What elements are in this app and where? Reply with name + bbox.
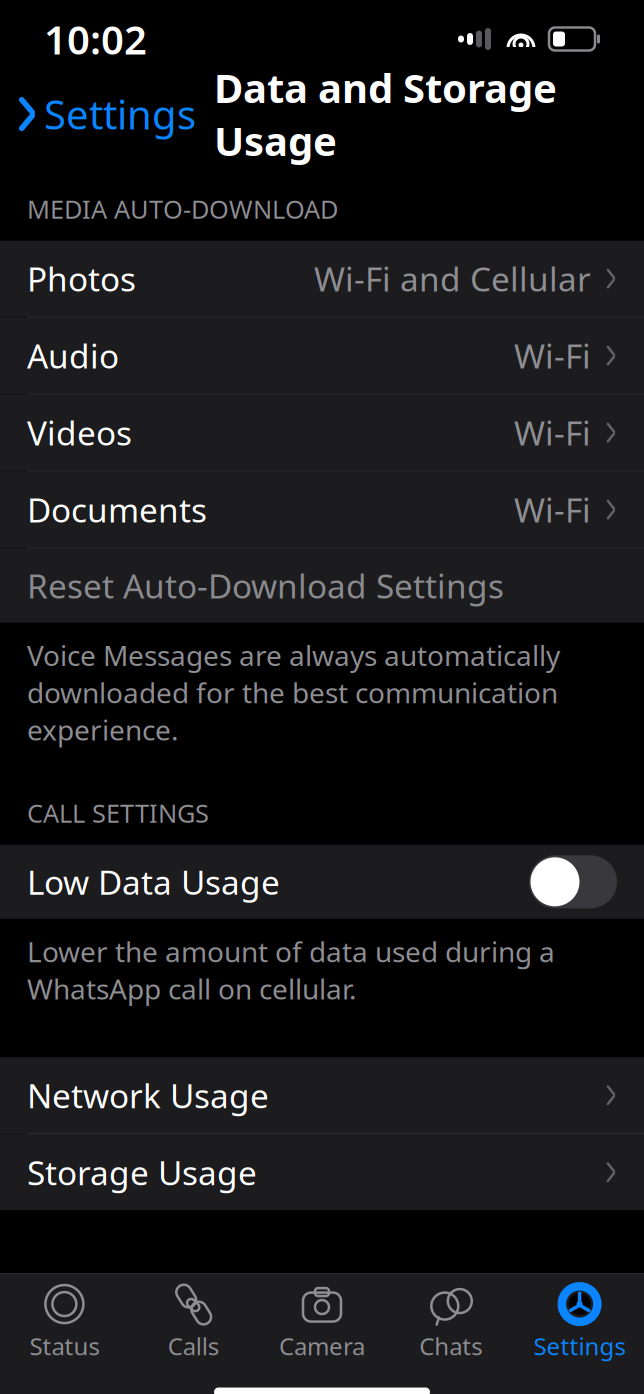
button[interactable]: Network Usage xyxy=(0,1057,644,1133)
button[interactable]: Documents xyxy=(0,472,644,548)
button[interactable]: Videos xyxy=(0,395,644,471)
staticText: Photos xyxy=(27,256,136,301)
staticText: Data and Storage Usage xyxy=(214,61,557,167)
staticText: Voice Messages are always automatically … xyxy=(27,637,560,748)
button[interactable]: Reset Auto-Download Settings xyxy=(0,549,644,623)
staticText: 10:02 xyxy=(44,12,147,65)
staticText: Videos xyxy=(27,410,132,455)
staticText: Camera xyxy=(279,1330,365,1362)
button[interactable]: Camera xyxy=(258,1272,386,1368)
staticText: Network Usage xyxy=(27,1073,269,1117)
staticText: Lower the amount of data used during a W… xyxy=(27,933,555,1007)
staticText: Status xyxy=(29,1330,99,1362)
staticText: Wi-Fi xyxy=(514,410,591,455)
button[interactable]: Status xyxy=(0,1272,129,1368)
staticText: Wi-Fi and Cellular xyxy=(314,256,591,301)
staticText: Audio xyxy=(27,333,119,378)
staticText: Documents xyxy=(27,487,207,532)
button[interactable]: Photos xyxy=(0,241,644,317)
staticText: Wi-Fi xyxy=(514,333,591,378)
button[interactable]: Storage Usage xyxy=(0,1134,644,1210)
button[interactable]: Chats xyxy=(386,1272,515,1368)
button[interactable]: Calls xyxy=(129,1272,258,1368)
staticText: Chats xyxy=(419,1330,482,1362)
staticText: Calls xyxy=(168,1330,219,1362)
staticText: Low Data Usage xyxy=(27,860,280,904)
button[interactable]: Audio xyxy=(0,318,644,394)
staticText: Storage Usage xyxy=(27,1150,257,1194)
button[interactable]: Settings xyxy=(515,1272,644,1368)
button[interactable]: Settings xyxy=(0,84,202,144)
staticText: CALL SETTINGS xyxy=(27,796,209,830)
staticText: Settings xyxy=(534,1330,626,1362)
staticText: MEDIA AUTO-DOWNLOAD xyxy=(27,192,338,226)
button[interactable]: Low Data Usage xyxy=(0,845,644,919)
staticText: Wi-Fi xyxy=(514,487,591,532)
staticText: Settings xyxy=(44,87,196,140)
staticText: Reset Auto-Download Settings xyxy=(27,563,504,608)
